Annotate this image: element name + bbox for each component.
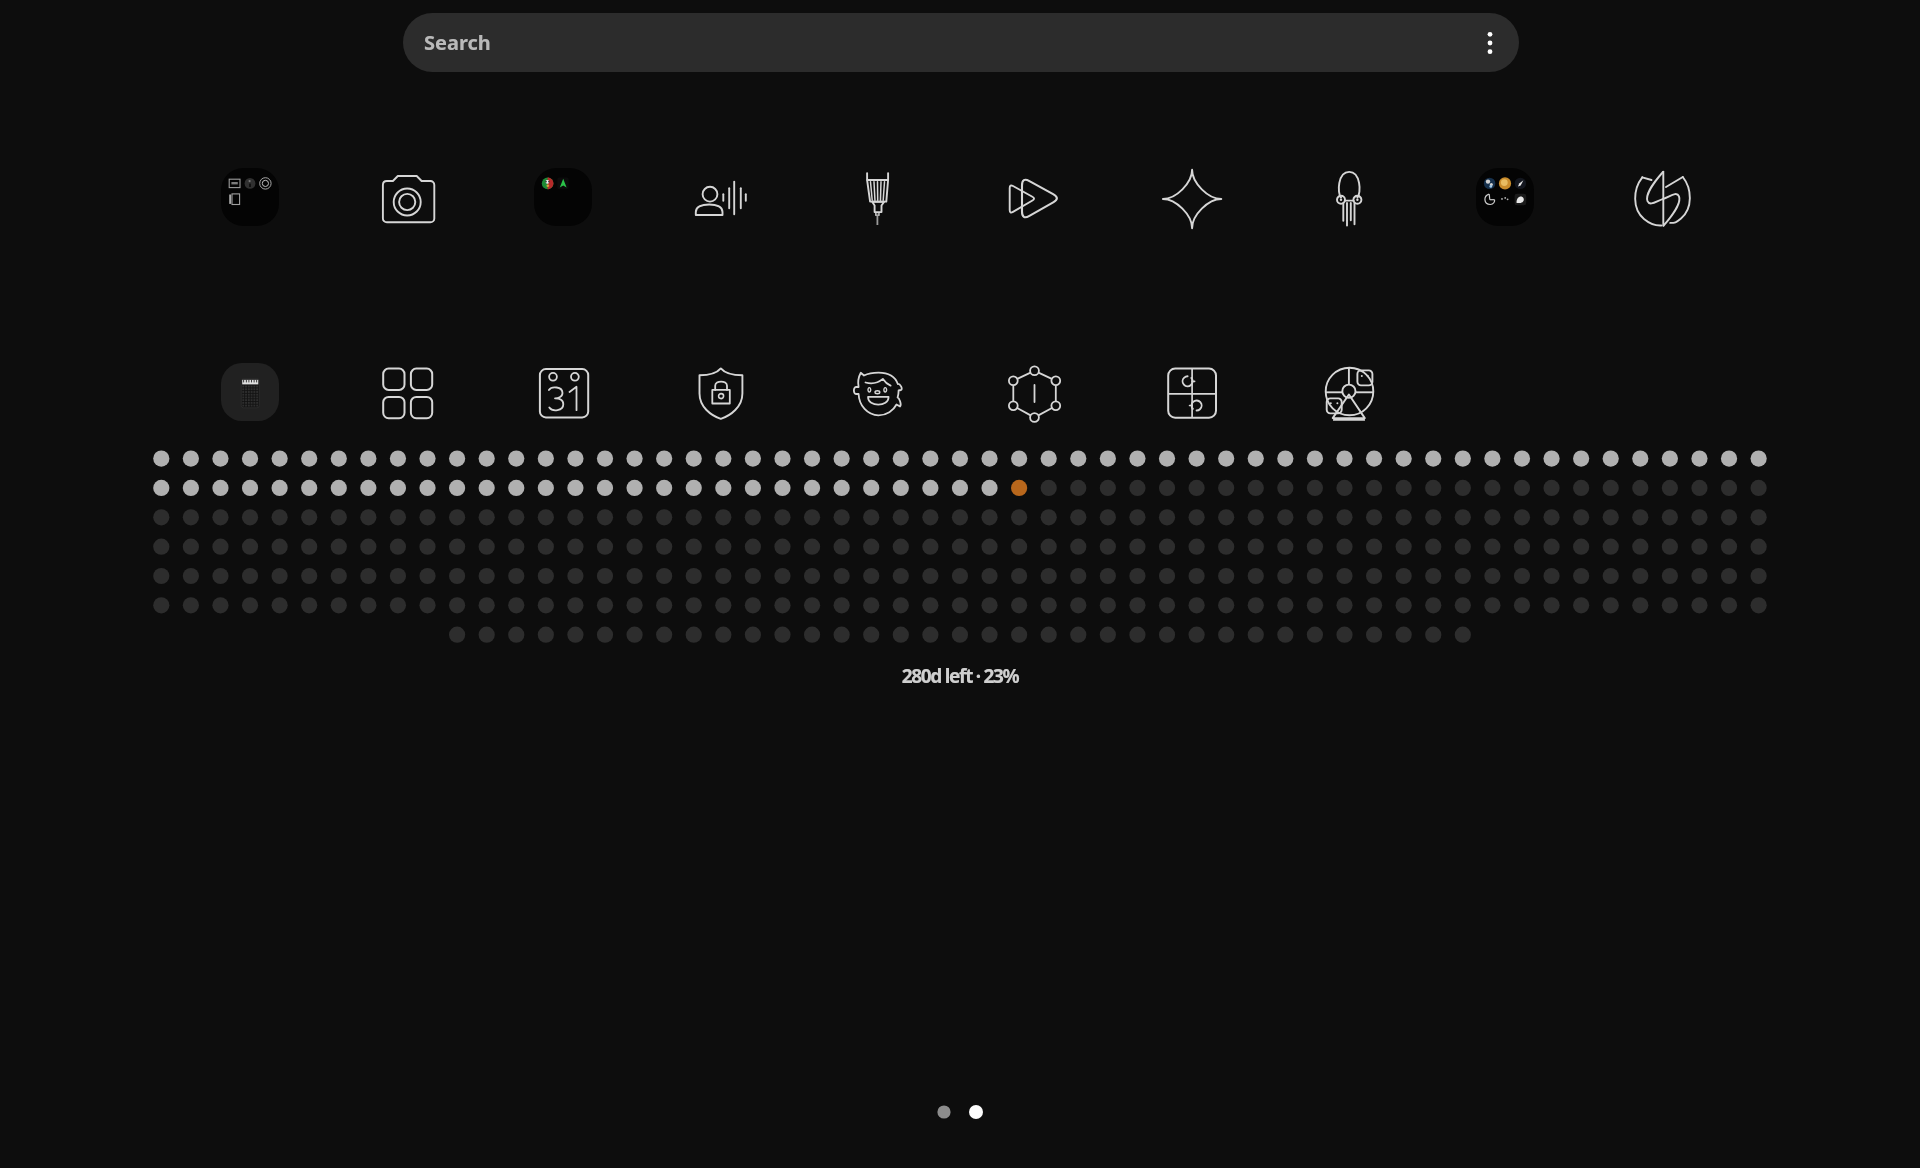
button[interactable]: Calendar xyxy=(531,360,595,424)
staticText: Search xyxy=(424,29,491,56)
button[interactable]: Recorder xyxy=(688,165,752,229)
button[interactable]: Year progress widget, 280 days left, 23 … xyxy=(150,447,1770,689)
button[interactable]: Calculator xyxy=(218,360,282,424)
button[interactable]: All apps xyxy=(375,360,439,424)
button[interactable]: Octopus xyxy=(1316,165,1380,229)
button[interactable]: Network xyxy=(1002,360,1066,424)
button[interactable]: Folder xyxy=(531,165,595,229)
button[interactable]: Pinwheel xyxy=(1630,165,1694,229)
button[interactable]: Security xyxy=(688,360,752,424)
button[interactable]: Folder xyxy=(1473,165,1537,229)
button[interactable]: Puzzle xyxy=(1159,360,1223,424)
button[interactable]: More options xyxy=(1475,28,1505,58)
button[interactable]: Page 1 xyxy=(936,1104,952,1120)
button[interactable]: Ferris wheel xyxy=(1316,360,1380,424)
button[interactable]: Profile xyxy=(845,360,909,424)
button[interactable]: Page 2 xyxy=(968,1104,984,1120)
button[interactable]: Assistant xyxy=(1159,165,1223,229)
button[interactable]: Player xyxy=(1002,165,1066,229)
button[interactable]: Light xyxy=(845,165,909,229)
button[interactable]: Search xyxy=(403,13,1519,72)
button[interactable]: Camera xyxy=(375,165,439,229)
staticText: 280d left · 23% xyxy=(860,663,1060,689)
button[interactable]: Folder xyxy=(218,165,282,229)
